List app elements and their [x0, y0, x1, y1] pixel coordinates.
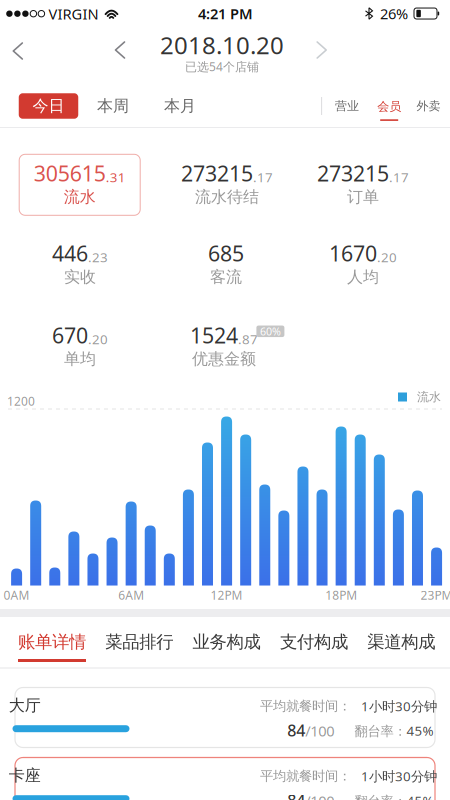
staticText: 本月 [164, 96, 196, 116]
button[interactable]: 670 [11, 308, 149, 386]
staticText: 卡座 [9, 766, 41, 785]
staticText: 翻台率： [354, 723, 406, 740]
staticText: 本周 [97, 96, 129, 116]
button[interactable]: 305615 [11, 146, 149, 224]
staticText: 优惠金额 [192, 349, 256, 369]
button[interactable]: 本月 [152, 93, 208, 119]
staticText: 平均就餐时间： [260, 698, 351, 714]
staticText: 账单详情 [18, 631, 86, 653]
staticText: VIRGIN [48, 4, 98, 23]
staticText: .17 [253, 168, 273, 186]
staticText: 273215 [317, 159, 389, 187]
staticText: .87 [238, 330, 258, 348]
staticText: 84 [287, 720, 305, 741]
staticText: 23PM [421, 587, 450, 603]
staticText: 60% [260, 324, 281, 338]
staticText: 渠道构成 [367, 631, 435, 653]
staticText: 已选54个店铺 [185, 58, 259, 74]
staticText: 273215 [181, 159, 253, 187]
staticText: 1524 [190, 321, 238, 349]
button[interactable]: Previous day [105, 32, 134, 68]
button[interactable]: 446 [11, 226, 149, 304]
staticText: 1小时30分钟 [361, 767, 437, 785]
staticText: .20 [377, 248, 397, 266]
staticText: 45% [406, 792, 433, 800]
staticText: 大厅 [9, 696, 41, 715]
staticText: 0AM [4, 587, 30, 603]
button[interactable]: 685 [157, 226, 295, 304]
staticText: 翻台率： [354, 793, 406, 800]
staticText: 18PM [325, 587, 357, 603]
staticText: 菜品排行 [105, 631, 173, 653]
button[interactable]: 1524 [155, 308, 293, 386]
button[interactable]: 273215 [294, 146, 432, 224]
staticText: 流水 [417, 390, 441, 404]
button[interactable]: 外卖 [409, 93, 449, 119]
staticText: 客流 [210, 267, 242, 287]
staticText: 1小时30分钟 [361, 697, 437, 715]
staticText: 支付构成 [280, 631, 348, 653]
staticText: 人均 [347, 267, 379, 287]
button[interactable]: 1670 [294, 226, 432, 304]
staticText: 1200 [7, 393, 35, 409]
staticText: 670 [52, 321, 88, 349]
staticText: .17 [389, 168, 409, 186]
staticText: 45% [406, 722, 433, 739]
staticText: 流水 [64, 187, 96, 207]
button[interactable]: Back [3, 33, 32, 69]
staticText: .31 [106, 168, 126, 186]
staticText: 446 [52, 239, 88, 267]
staticText: 305615 [34, 159, 106, 187]
staticText: 订单 [347, 187, 379, 207]
button[interactable]: 渠道构成 [359, 618, 444, 666]
staticText: /100 [305, 791, 334, 800]
staticText: 流水待结 [195, 187, 259, 207]
button[interactable]: 菜品排行 [97, 618, 182, 666]
staticText: 4:21 PM [198, 4, 253, 23]
button[interactable]: 今日 [19, 93, 78, 119]
button[interactable]: 营业 [327, 93, 367, 119]
button[interactable]: 账单详情 [9, 618, 94, 666]
staticText: 会员 [377, 99, 401, 114]
staticText: 平均就餐时间： [260, 768, 351, 784]
button[interactable]: 会员 [369, 92, 409, 120]
button[interactable]: 本周 [85, 93, 141, 119]
staticText: 业务构成 [193, 631, 261, 653]
staticText: 实收 [64, 267, 96, 287]
button[interactable]: Next day [307, 32, 336, 68]
staticText: 685 [208, 239, 244, 267]
staticText: 26% [380, 4, 408, 23]
button[interactable]: 支付构成 [271, 618, 356, 666]
staticText: 单均 [64, 349, 96, 369]
staticText: 今日 [32, 96, 64, 116]
button[interactable]: 大厅 [15, 687, 435, 747]
staticText: 营业 [335, 99, 359, 113]
staticText: 2018.10.20 [160, 29, 284, 61]
staticText: .23 [88, 248, 108, 266]
staticText: 12PM [211, 587, 243, 603]
staticText: 1670 [329, 239, 377, 267]
staticText: /100 [305, 721, 334, 740]
staticText: 外卖 [417, 99, 441, 113]
button[interactable]: 卡座 [15, 757, 435, 800]
staticText: 6AM [118, 587, 144, 603]
button[interactable]: 273215 [158, 146, 296, 224]
button[interactable]: 业务构成 [184, 618, 269, 666]
staticText: 84 [287, 790, 305, 800]
staticText: .20 [88, 330, 108, 348]
